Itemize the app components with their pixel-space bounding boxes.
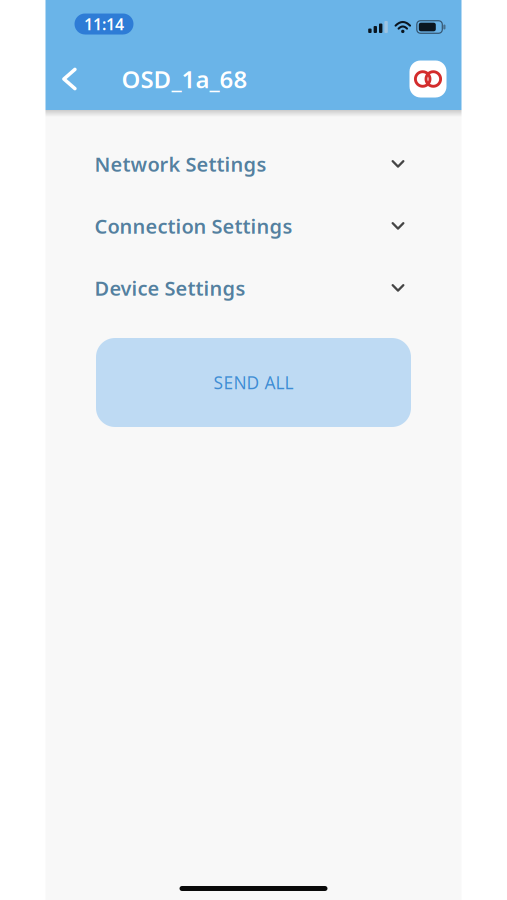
button[interactable]: Connect device — [409, 60, 446, 97]
button[interactable]: Back — [45, 68, 85, 90]
button[interactable]: Network Settings — [45, 133, 461, 195]
staticText: SEND ALL — [213, 371, 293, 394]
staticText: Device Settings — [94, 275, 245, 301]
staticText: Network Settings — [94, 151, 266, 177]
button[interactable]: Device Settings — [45, 257, 461, 319]
staticText: Connection Settings — [94, 213, 292, 239]
button[interactable]: Connection Settings — [45, 195, 461, 257]
staticText: 11:14 — [84, 13, 124, 35]
button[interactable]: SEND ALL — [96, 338, 411, 427]
staticText: OSD_1a_68 — [121, 63, 247, 95]
